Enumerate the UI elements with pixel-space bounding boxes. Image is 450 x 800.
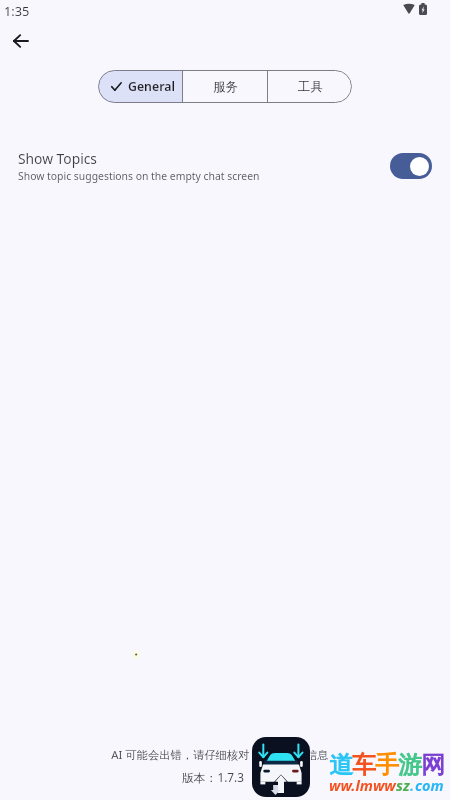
button[interactable]: 服务	[183, 70, 267, 103]
staticText: sz	[396, 775, 410, 795]
staticText: 道	[329, 750, 352, 780]
staticText: 手	[375, 750, 398, 780]
button[interactable]: Show Topics toggle	[390, 153, 432, 179]
staticText: AI 可能会出错，请仔细核对，不要轻信信息	[111, 747, 329, 762]
staticText: 1:35	[4, 2, 30, 19]
staticText: com	[415, 775, 444, 795]
staticText: 服务	[213, 79, 238, 95]
button[interactable]: 工具	[268, 70, 352, 103]
staticText: 工具	[298, 79, 323, 95]
staticText: General	[128, 78, 175, 95]
staticText: Show Topics	[18, 149, 97, 168]
staticText: Show topic suggestions on the empty chat…	[18, 169, 260, 183]
staticText: 车	[352, 750, 375, 780]
button[interactable]: Show Topics	[0, 141, 450, 191]
button[interactable]: General	[98, 70, 182, 103]
staticText: 游	[398, 750, 421, 780]
staticText: ww.lmww	[329, 775, 396, 795]
button[interactable]: Back	[6, 26, 35, 55]
staticText: .	[410, 775, 415, 795]
staticText: 网	[421, 750, 444, 780]
staticText: 版本：1.7.3	[182, 769, 244, 785]
